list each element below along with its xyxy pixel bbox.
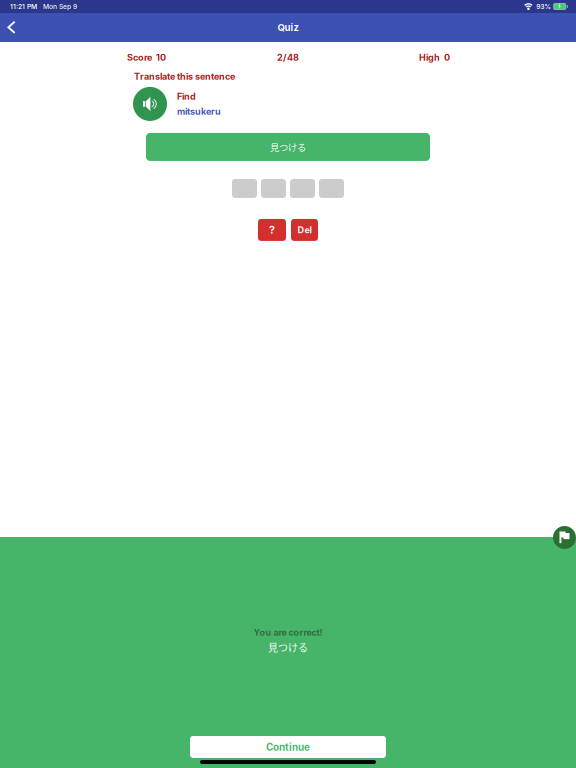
button[interactable]: ? [258,219,286,241]
staticText: mitsukeru [177,106,221,117]
button[interactable]: Del [291,219,318,241]
button[interactable]: Empty letter slot [232,179,257,198]
button[interactable]: 見つける [146,133,430,161]
button[interactable]: Empty letter slot [319,179,344,198]
staticText: Del [297,224,311,235]
staticText: 見つける [270,140,306,154]
staticText: You are correct! [253,627,322,638]
staticText: Score 10 [127,52,166,63]
staticText: Mon Sep 9 [43,2,77,11]
staticText: 見つける [268,640,308,654]
button[interactable]: Play pronunciation [133,87,167,121]
staticText: High 0 [419,52,450,63]
staticText: Translate this sentence [134,71,235,82]
staticText: Quiz [277,22,298,33]
staticText: Find [177,91,196,102]
staticText: ? [269,223,275,236]
staticText: Continue [266,741,310,753]
staticText: 11:21 PM [10,2,37,11]
button[interactable]: Report a problem [553,526,576,549]
button[interactable]: Continue [190,736,386,758]
button[interactable]: Empty letter slot [290,179,315,198]
button[interactable]: Back [0,13,23,42]
staticText: 93% [536,2,551,11]
staticText: 2/48 [277,52,299,63]
button[interactable]: Empty letter slot [261,179,286,198]
